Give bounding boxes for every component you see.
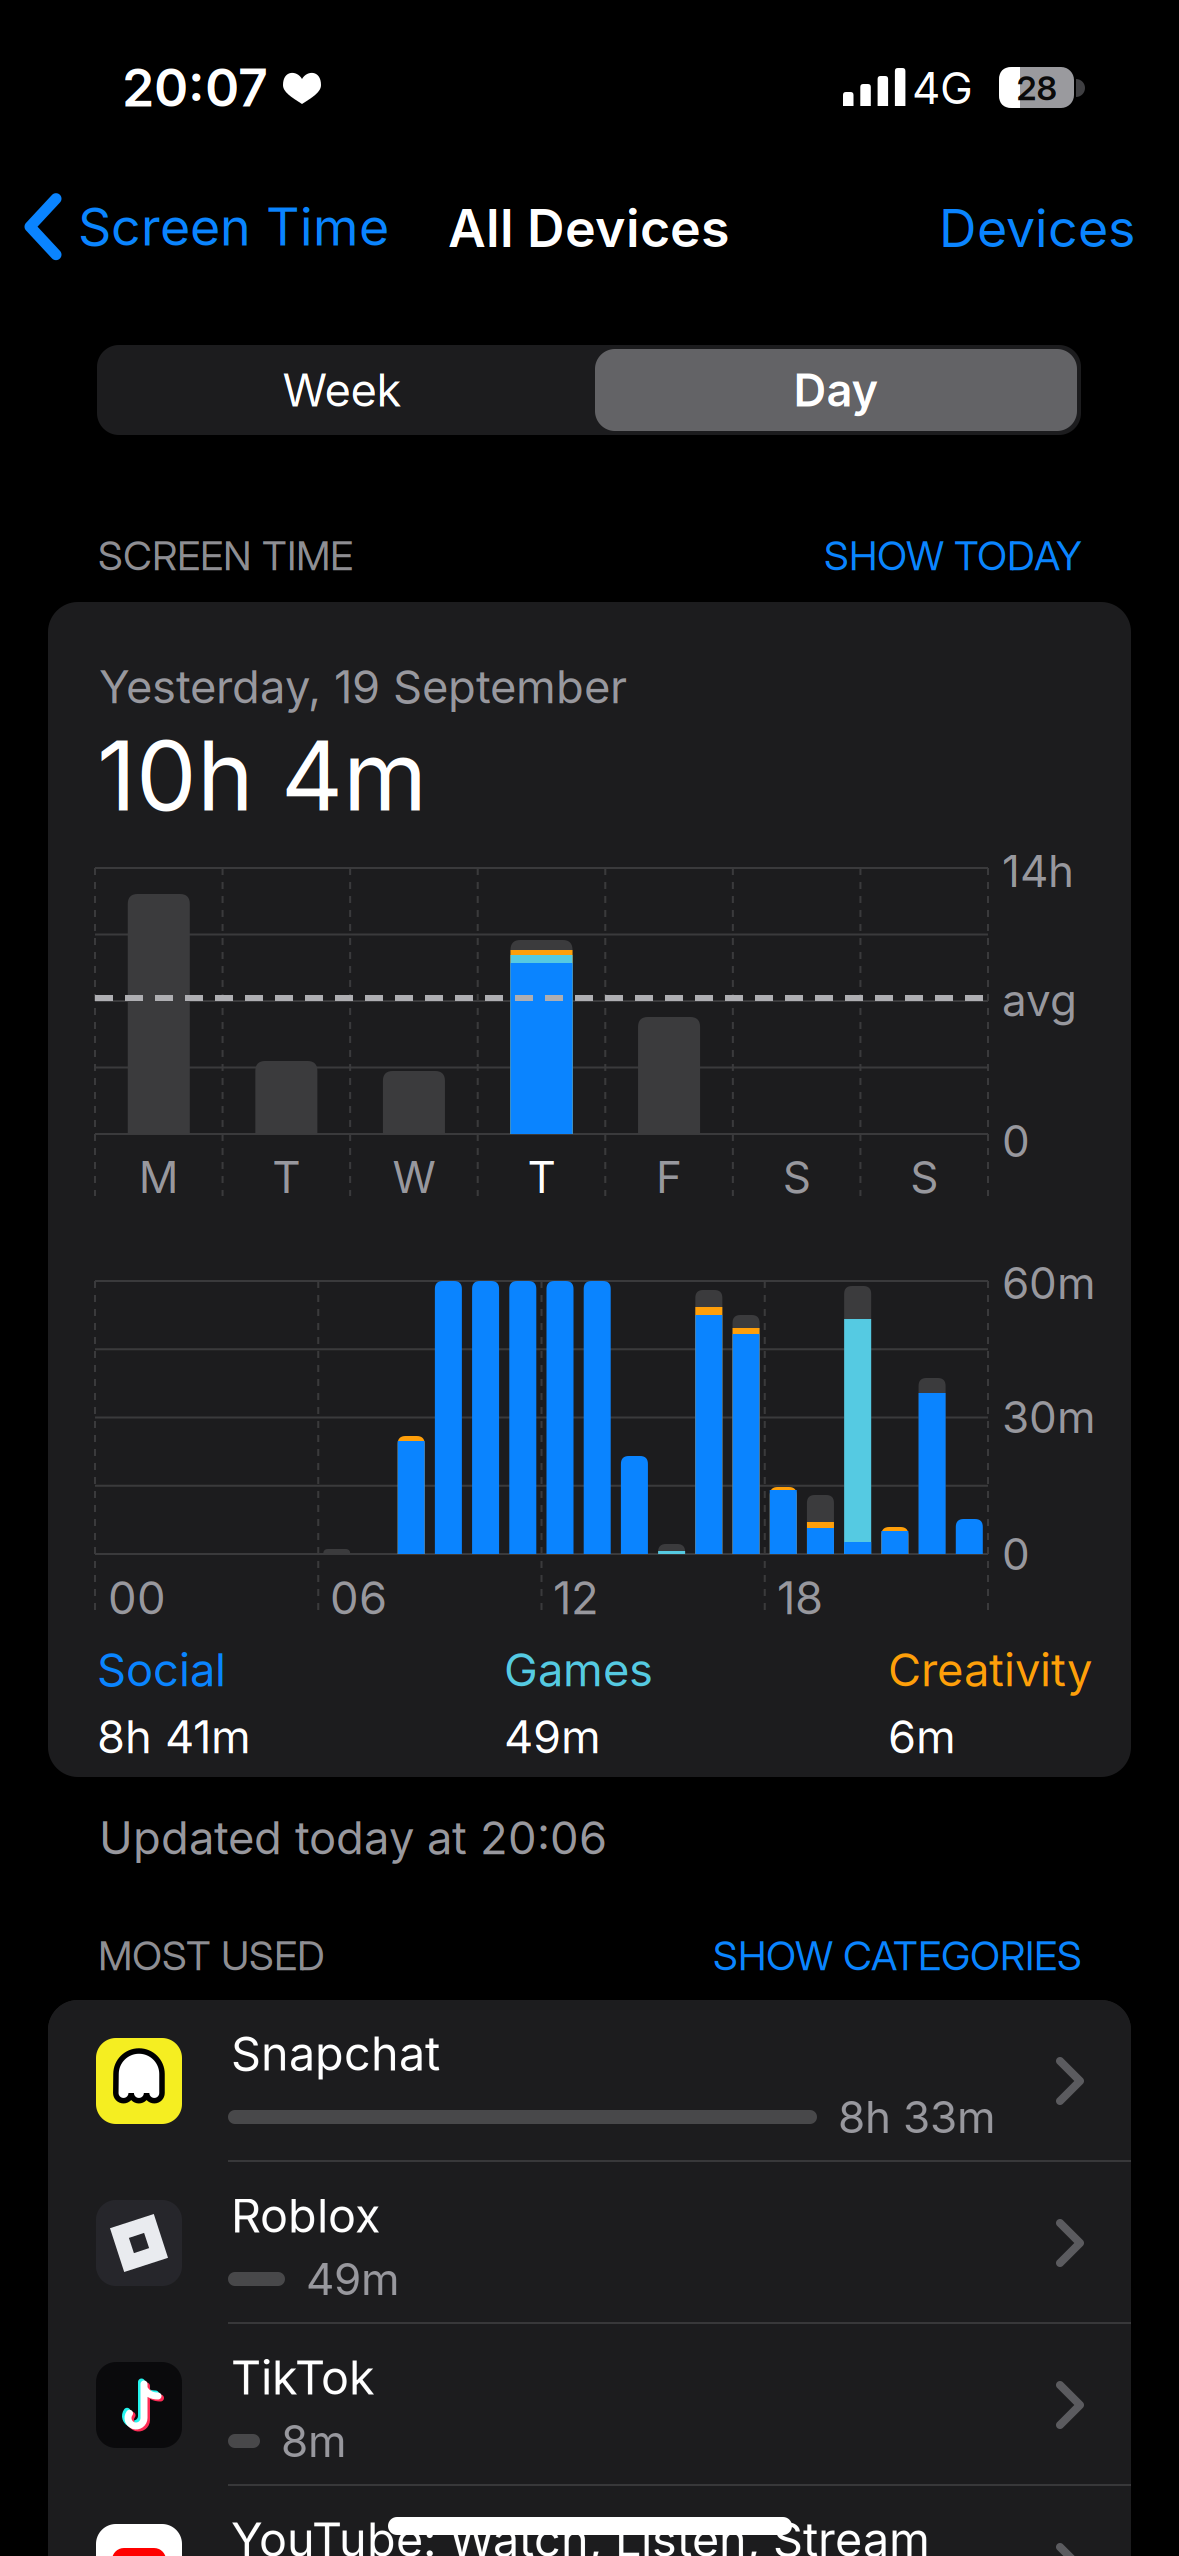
button[interactable]: SHOW TODAY <box>824 532 1082 579</box>
staticText: Day <box>793 363 878 417</box>
staticText: 8h 33m <box>838 2091 996 2143</box>
staticText: Screen Time <box>78 196 389 257</box>
staticText: Week <box>282 363 401 417</box>
staticText: 60m <box>1002 1257 1096 1309</box>
button[interactable]: Devices <box>939 197 1135 259</box>
staticText: 0 <box>1002 1115 1030 1167</box>
staticText: 12 <box>553 1571 599 1624</box>
staticText: 8m <box>281 2415 347 2467</box>
staticText: Updated today at 20:06 <box>99 1811 607 1864</box>
staticText: W <box>392 1151 435 1203</box>
staticText: 49m <box>306 2253 400 2305</box>
staticText: 06 <box>330 1571 387 1624</box>
staticText: 14h <box>1002 845 1074 897</box>
button[interactable]: Snapchat <box>48 2000 1131 2162</box>
staticText: T <box>272 1151 300 1203</box>
staticText: SHOW TODAY <box>824 532 1082 579</box>
staticText: 30m <box>1002 1391 1096 1443</box>
staticText: All Devices <box>448 197 730 259</box>
staticText: 0 <box>1002 1528 1030 1580</box>
button[interactable]: Roblox <box>48 2162 1131 2324</box>
staticText: F <box>656 1151 682 1203</box>
button[interactable]: SHOW CATEGORIES <box>713 1932 1082 1979</box>
staticText: 00 <box>108 1571 166 1624</box>
staticText: Social <box>97 1643 226 1696</box>
staticText: Games <box>504 1643 653 1696</box>
staticText: 49m <box>504 1710 601 1763</box>
staticText: S <box>783 1151 811 1203</box>
staticText: Roblox <box>231 2188 380 2243</box>
staticText: M <box>139 1151 179 1203</box>
staticText: S <box>910 1151 938 1203</box>
button[interactable]: Week <box>99 345 585 435</box>
staticText: Yesterday, 19 September <box>99 660 627 713</box>
button[interactable]: YouTube: Watch, Listen, Stream <box>48 2486 1131 2556</box>
staticText: 6m <box>888 1710 956 1763</box>
button[interactable]: Screen Time <box>28 196 389 257</box>
staticText: avg <box>1002 974 1077 1026</box>
staticText: MOST USED <box>98 1932 325 1979</box>
staticText: TikTok <box>231 2350 375 2405</box>
button[interactable]: TikTok <box>48 2324 1131 2486</box>
staticText: Devices <box>939 197 1135 259</box>
staticText: Creativity <box>888 1643 1092 1696</box>
staticText: 20:07 <box>122 57 268 118</box>
staticText: SHOW CATEGORIES <box>713 1932 1082 1979</box>
staticText: YouTube: Watch, Listen, Stream <box>231 2512 930 2556</box>
staticText: T <box>527 1151 555 1203</box>
staticText: 10h 4m <box>97 719 427 832</box>
staticText: 4G <box>912 62 973 114</box>
staticText: 8h 41m <box>97 1710 251 1763</box>
button[interactable]: Day <box>595 349 1077 431</box>
staticText: SCREEN TIME <box>98 532 353 579</box>
staticText: 18 <box>777 1571 823 1624</box>
staticText: Snapchat <box>231 2026 440 2081</box>
staticText: 28 <box>1016 68 1057 108</box>
